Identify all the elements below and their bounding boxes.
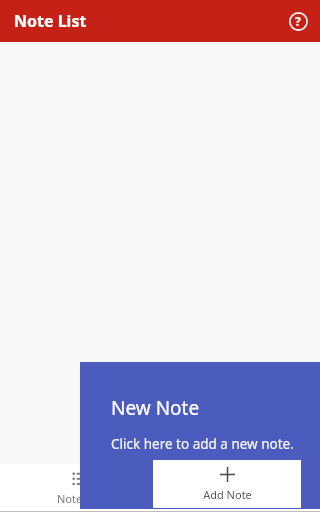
button[interactable]: New Note xyxy=(80,362,320,509)
staticText: Note List xyxy=(14,10,87,32)
staticText: Add Note xyxy=(203,487,252,502)
button[interactable]: Help xyxy=(283,6,313,36)
staticText: New Note xyxy=(111,395,200,421)
button[interactable]: Add Note xyxy=(153,460,301,508)
staticText: Note List xyxy=(57,491,103,506)
button[interactable]: Note List xyxy=(0,464,160,512)
staticText: Click here to add a new note. xyxy=(111,435,294,453)
staticText: ? xyxy=(295,13,301,29)
